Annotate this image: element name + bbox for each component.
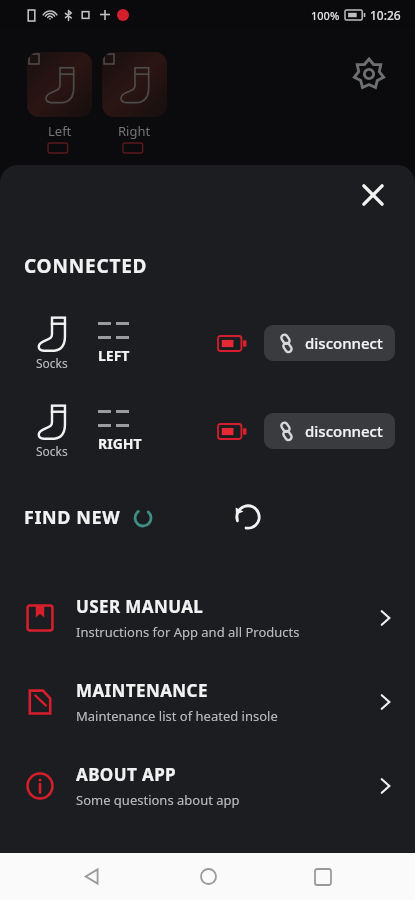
- staticText: MAINTENANCE: [76, 679, 208, 702]
- staticText: USER MANUAL: [76, 595, 204, 618]
- staticText: disconnect: [305, 333, 383, 353]
- staticText: RIGHT: [98, 434, 142, 453]
- button[interactable]: ABOUT APP: [0, 755, 415, 817]
- staticText: Right: [118, 122, 151, 140]
- button[interactable]: Recents: [299, 853, 347, 900]
- button[interactable]: Socks: [0, 395, 415, 467]
- staticText: LEFT: [98, 346, 130, 365]
- button[interactable]: MAINTENANCE: [0, 671, 415, 733]
- button[interactable]: Close: [351, 173, 395, 217]
- staticText: FIND NEW: [24, 505, 121, 530]
- button[interactable]: Back: [68, 853, 116, 900]
- button[interactable]: [27, 52, 92, 117]
- button[interactable]: Socks: [0, 307, 415, 379]
- staticText: Maintenance list of heated insole: [76, 707, 278, 725]
- button[interactable]: Settings: [347, 52, 391, 96]
- staticText: ABOUT APP: [76, 763, 177, 786]
- staticText: disconnect: [305, 421, 383, 441]
- button[interactable]: disconnect: [264, 325, 395, 361]
- button[interactable]: Refresh: [225, 495, 271, 539]
- staticText: Instructions for App and all Products: [76, 623, 300, 641]
- button[interactable]: disconnect: [264, 413, 395, 449]
- button[interactable]: Home: [184, 853, 232, 900]
- button[interactable]: FIND NEW: [0, 505, 153, 530]
- staticText: Socks: [36, 443, 68, 459]
- staticText: Left: [48, 122, 72, 140]
- staticText: CONNECTED: [24, 253, 148, 279]
- button[interactable]: [102, 52, 167, 117]
- staticText: Some questions about app: [76, 791, 240, 809]
- staticText: 10:26: [370, 7, 401, 23]
- staticText: Socks: [36, 355, 68, 371]
- button[interactable]: USER MANUAL: [0, 587, 415, 649]
- staticText: 100%: [311, 8, 340, 23]
